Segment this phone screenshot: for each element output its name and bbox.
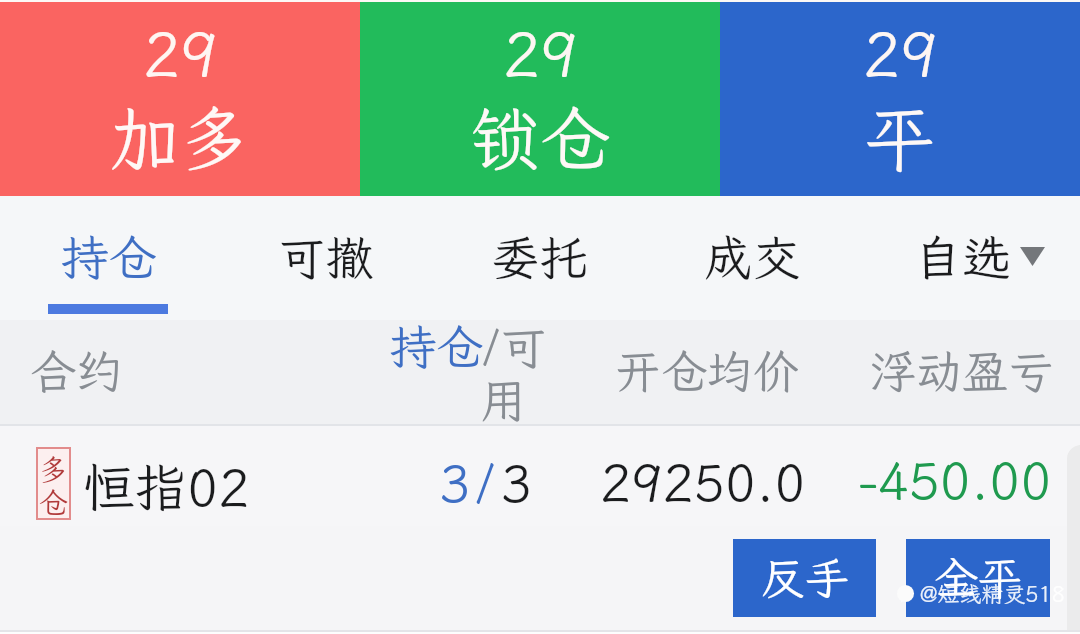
- staticText: 全平: [934, 549, 1022, 607]
- staticText: 成交: [704, 225, 801, 288]
- button[interactable]: 29: [360, 2, 720, 197]
- staticText: 29: [503, 12, 578, 94]
- staticText: 浮动盈亏: [870, 341, 1054, 402]
- staticText: 反手: [761, 549, 849, 607]
- staticText: 仓: [39, 483, 69, 521]
- staticText: 29250.0: [600, 447, 806, 515]
- staticText: 29: [143, 12, 218, 94]
- button[interactable]: 委托: [469, 196, 609, 320]
- button[interactable]: 自选: [892, 196, 1032, 320]
- button[interactable]: 29: [0, 2, 360, 197]
- button[interactable]: 展开自选列表: [1020, 247, 1045, 266]
- staticText: 可撤: [277, 225, 374, 288]
- staticText: 加多: [110, 92, 250, 184]
- staticText: 多: [39, 450, 69, 488]
- staticText: 委托: [491, 225, 588, 288]
- staticText: 自选: [914, 225, 1011, 288]
- staticText: 持仓: [60, 225, 157, 288]
- staticText: 持仓/可: [389, 315, 547, 377]
- staticText: 29: [863, 12, 938, 94]
- staticText: @短线精灵518: [920, 579, 1065, 608]
- button[interactable]: 可撤: [255, 196, 395, 320]
- staticText: 合约: [30, 341, 122, 402]
- button[interactable]: 全平: [906, 539, 1050, 617]
- staticText: 用: [480, 368, 527, 430]
- button[interactable]: 反手: [733, 539, 876, 617]
- button[interactable]: 持仓: [38, 196, 178, 320]
- staticText: 3/3: [439, 448, 538, 516]
- staticText: 恒指02: [83, 452, 250, 520]
- staticText: 开仓均价: [615, 341, 799, 402]
- button[interactable]: 成交: [682, 196, 822, 320]
- staticText: 平: [865, 92, 935, 184]
- staticText: 锁仓: [470, 92, 610, 184]
- staticText: -450.00: [859, 445, 1052, 513]
- button[interactable]: 29: [720, 2, 1080, 197]
- button[interactable]: 多: [0, 426, 1080, 526]
